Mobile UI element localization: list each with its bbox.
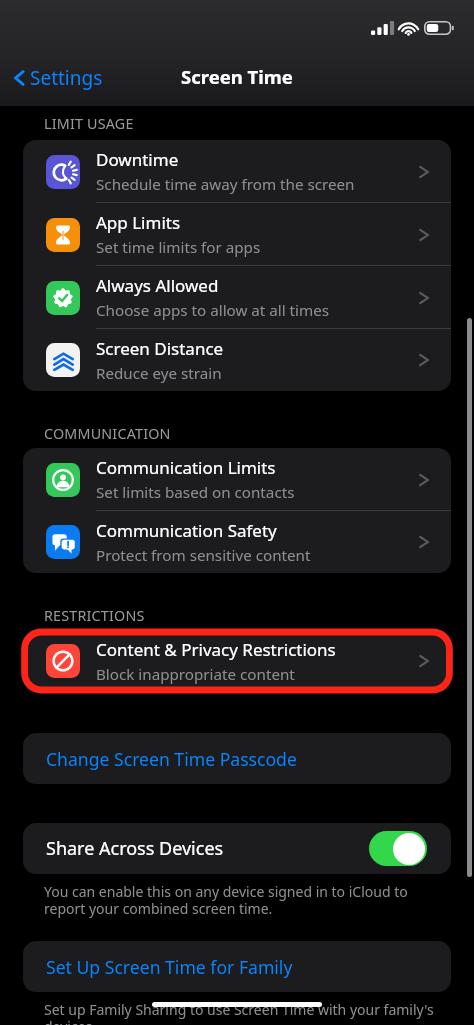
button[interactable]: Set Up Screen Time for Family	[23, 941, 451, 992]
staticText: Block inappropriate content	[96, 664, 295, 685]
button[interactable]: Content & Privacy Restrictions	[23, 630, 451, 692]
button[interactable]: Always Allowed	[23, 266, 451, 329]
staticText: Downtime	[96, 148, 179, 171]
staticText: Always Allowed	[96, 274, 219, 297]
staticText: Change Screen Time Passcode	[46, 747, 297, 771]
staticText: You can enable this on any device signed…	[44, 882, 436, 918]
staticText: RESTRICTIONS	[44, 606, 145, 625]
staticText: Set Up Screen Time for Family	[46, 955, 293, 979]
staticText: Share Across Devices	[46, 836, 369, 861]
button[interactable]: Settings	[12, 65, 103, 91]
staticText: Screen Distance	[96, 337, 224, 360]
button[interactable]: Screen Distance	[23, 329, 451, 391]
staticText: Communication Safety	[96, 519, 277, 542]
staticText: Set time limits for apps	[96, 237, 261, 258]
staticText: Protect from sensitive content	[96, 545, 311, 566]
staticText: Content & Privacy Restrictions	[96, 638, 336, 661]
staticText: App Limits	[96, 211, 181, 234]
staticText: Reduce eye strain	[96, 363, 222, 384]
button[interactable]: Communication Safety	[23, 511, 451, 573]
button[interactable]: Change Screen Time Passcode	[23, 733, 451, 784]
staticText: Schedule time away from the screen	[96, 174, 355, 195]
staticText: Set up Family Sharing to use Screen Time…	[44, 1000, 436, 1025]
staticText: Choose apps to allow at all times	[96, 300, 330, 321]
staticText: Set limits based on contacts	[96, 482, 295, 503]
button[interactable]: App Limits	[23, 203, 451, 266]
staticText: Screen Time	[181, 64, 293, 89]
staticText: Settings	[30, 65, 103, 91]
staticText: LIMIT USAGE	[44, 114, 134, 133]
staticText: Communication Limits	[96, 456, 276, 479]
staticText: COMMUNICATION	[44, 424, 171, 443]
button[interactable]: Downtime	[23, 140, 451, 203]
button[interactable]: Share Across Devices toggle	[369, 831, 427, 866]
button[interactable]: Communication Limits	[23, 448, 451, 511]
